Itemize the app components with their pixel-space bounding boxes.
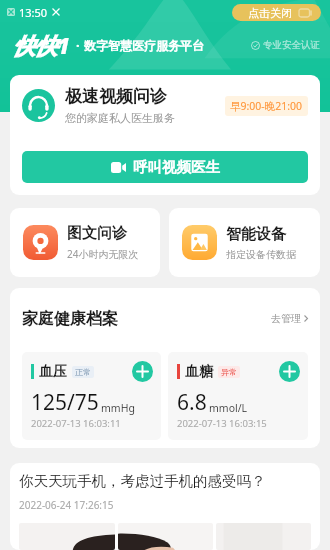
staticText: 快快1: [13, 30, 70, 60]
staticText: 正常: [75, 367, 91, 377]
staticText: 家庭健康档案: [22, 309, 118, 327]
staticText: 您的家庭私人医生服务: [65, 111, 175, 125]
staticText: 13:50: [19, 5, 48, 20]
staticText: mmHg: [101, 401, 135, 415]
staticText: 2022-07-13 16:03:11: [31, 417, 121, 430]
staticText: 图文问诊: [67, 224, 127, 243]
staticText: 125/75: [31, 388, 99, 417]
staticText: 专业安全认证: [263, 39, 320, 51]
staticText: 智能设备: [226, 225, 286, 244]
button[interactable]: 添加记录: [279, 361, 300, 382]
staticText: 呼叫视频医生: [133, 158, 220, 176]
staticText: 6.8: [177, 388, 207, 417]
staticText: mmol/L: [209, 401, 248, 415]
staticText: 血压: [39, 363, 67, 381]
staticText: 2022-07-13 16:03:15: [177, 417, 267, 430]
button[interactable]: 你天天玩手机，考虑过手机的感受吗？: [10, 463, 320, 550]
button[interactable]: 点击关闭: [232, 4, 321, 21]
staticText: 你天天玩手机，考虑过手机的感受吗？: [19, 472, 266, 490]
button[interactable]: 图文问诊: [10, 208, 160, 277]
staticText: 点击关闭: [248, 6, 292, 20]
staticText: 2022-06-24 17:26:15: [19, 498, 114, 512]
button[interactable]: 添加记录: [132, 361, 153, 382]
staticText: 异常: [221, 367, 237, 377]
staticText: 24小时内无限次: [67, 247, 139, 261]
staticText: 数字智慧医疗服务平台: [84, 38, 204, 53]
staticText: 极速视频问诊: [65, 86, 167, 107]
staticText: 早9:00-晚21:00: [230, 99, 303, 113]
staticText: 去管理: [271, 312, 301, 325]
button[interactable]: 血压: [22, 352, 161, 440]
button[interactable]: 去管理: [271, 312, 308, 325]
staticText: 血糖: [185, 363, 213, 381]
staticText: ·: [76, 36, 80, 54]
button[interactable]: 血糖: [168, 352, 308, 440]
staticText: 指定设备传数据: [226, 248, 296, 261]
button[interactable]: 智能设备: [169, 208, 320, 277]
button[interactable]: 呼叫视频医生: [22, 151, 308, 183]
